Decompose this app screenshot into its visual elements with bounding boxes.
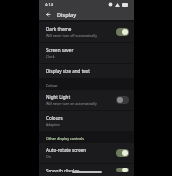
staticText: 4:14 [45, 2, 53, 7]
staticText: Night Light [46, 94, 71, 100]
staticText: Other display controls [46, 136, 84, 141]
staticText: Colours [46, 115, 63, 121]
button[interactable]: Toggle off [116, 96, 129, 104]
button[interactable]: Toggle on [116, 149, 129, 157]
staticText: On [46, 154, 51, 159]
staticText: Screen saver [46, 47, 74, 53]
staticText: Display [57, 11, 77, 18]
staticText: Auto-rotate screen [46, 147, 87, 153]
staticText: Colour [46, 83, 58, 88]
button[interactable]: Dark theme [39, 22, 134, 42]
staticText: Will never turn off automatically [46, 33, 97, 38]
button[interactable]: Colours [39, 111, 134, 131]
button[interactable]: Smooth display [39, 164, 134, 176]
staticText: Dark theme [46, 26, 72, 32]
button[interactable]: Auto-rotate screen [39, 143, 134, 163]
button[interactable]: Toggle on [116, 168, 129, 172]
button[interactable]: Night Light [39, 90, 134, 110]
staticText: Display size and text [46, 68, 90, 74]
staticText: Clock [46, 54, 55, 59]
staticText: Smooth display [46, 168, 80, 172]
button[interactable]: Screen saver [39, 43, 134, 63]
staticText: Will never turn on automatically [46, 101, 97, 106]
button[interactable]: Back [44, 10, 53, 19]
button[interactable]: Display size and text [39, 64, 134, 78]
button[interactable]: Toggle on [116, 28, 129, 36]
staticText: Adaptive [46, 122, 60, 127]
